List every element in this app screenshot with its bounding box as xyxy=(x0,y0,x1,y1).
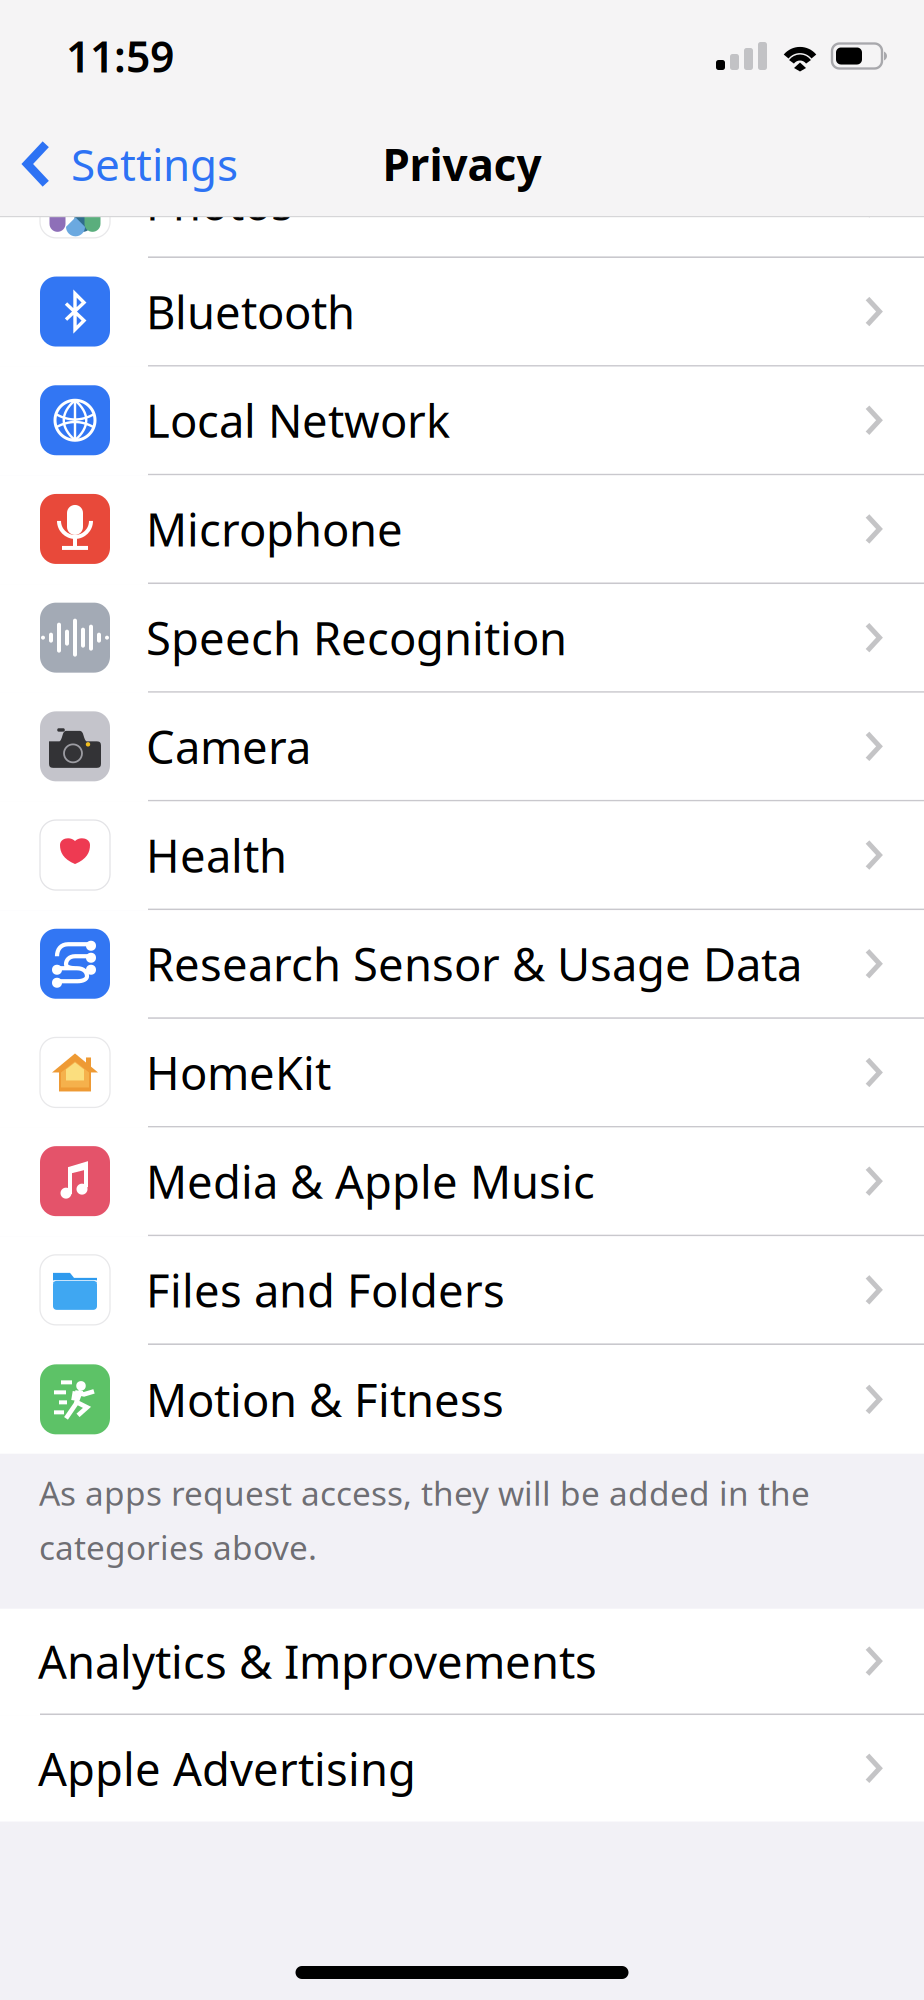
button[interactable]: Media & Apple Music xyxy=(0,1128,924,1236)
button[interactable]: Apple Advertising xyxy=(0,1715,924,1821)
staticText: Settings xyxy=(71,135,238,193)
staticText: Photos xyxy=(146,173,293,233)
staticText: Camera xyxy=(146,716,311,776)
staticText: Speech Recognition xyxy=(146,607,567,668)
staticText: Health xyxy=(146,825,287,885)
staticText: 11:59 xyxy=(66,28,174,84)
button[interactable]: Camera xyxy=(0,693,924,801)
staticText: Media & Apple Music xyxy=(146,1151,595,1211)
staticText: HomeKit xyxy=(146,1042,331,1102)
button[interactable]: Settings xyxy=(0,112,248,216)
staticText: categories above. xyxy=(39,1525,317,1569)
button[interactable]: Photos xyxy=(0,149,924,258)
button[interactable]: Speech Recognition xyxy=(0,584,924,693)
button[interactable]: Health xyxy=(0,801,924,910)
staticText: As apps request access, they will be add… xyxy=(39,1471,810,1515)
button[interactable]: Research Sensor & Usage Data xyxy=(0,910,924,1019)
button[interactable]: Analytics & Improvements xyxy=(0,1609,924,1715)
button[interactable]: Motion & Fitness xyxy=(0,1345,924,1454)
staticText: Analytics & Improvements xyxy=(38,1631,597,1691)
staticText: Bluetooth xyxy=(146,281,355,342)
button[interactable]: Bluetooth xyxy=(0,258,924,367)
button[interactable]: Local Network xyxy=(0,367,924,475)
button[interactable]: Files and Folders xyxy=(0,1236,924,1345)
staticText: Research Sensor & Usage Data xyxy=(146,934,802,994)
button[interactable]: Microphone xyxy=(0,475,924,584)
staticText: Privacy xyxy=(382,135,541,193)
staticText: Apple Advertising xyxy=(38,1738,416,1798)
button[interactable]: HomeKit xyxy=(0,1019,924,1128)
staticText: Local Network xyxy=(146,390,450,450)
staticText: Microphone xyxy=(146,499,403,559)
staticText: Motion & Fitness xyxy=(146,1369,504,1429)
staticText: Files and Folders xyxy=(146,1260,505,1320)
